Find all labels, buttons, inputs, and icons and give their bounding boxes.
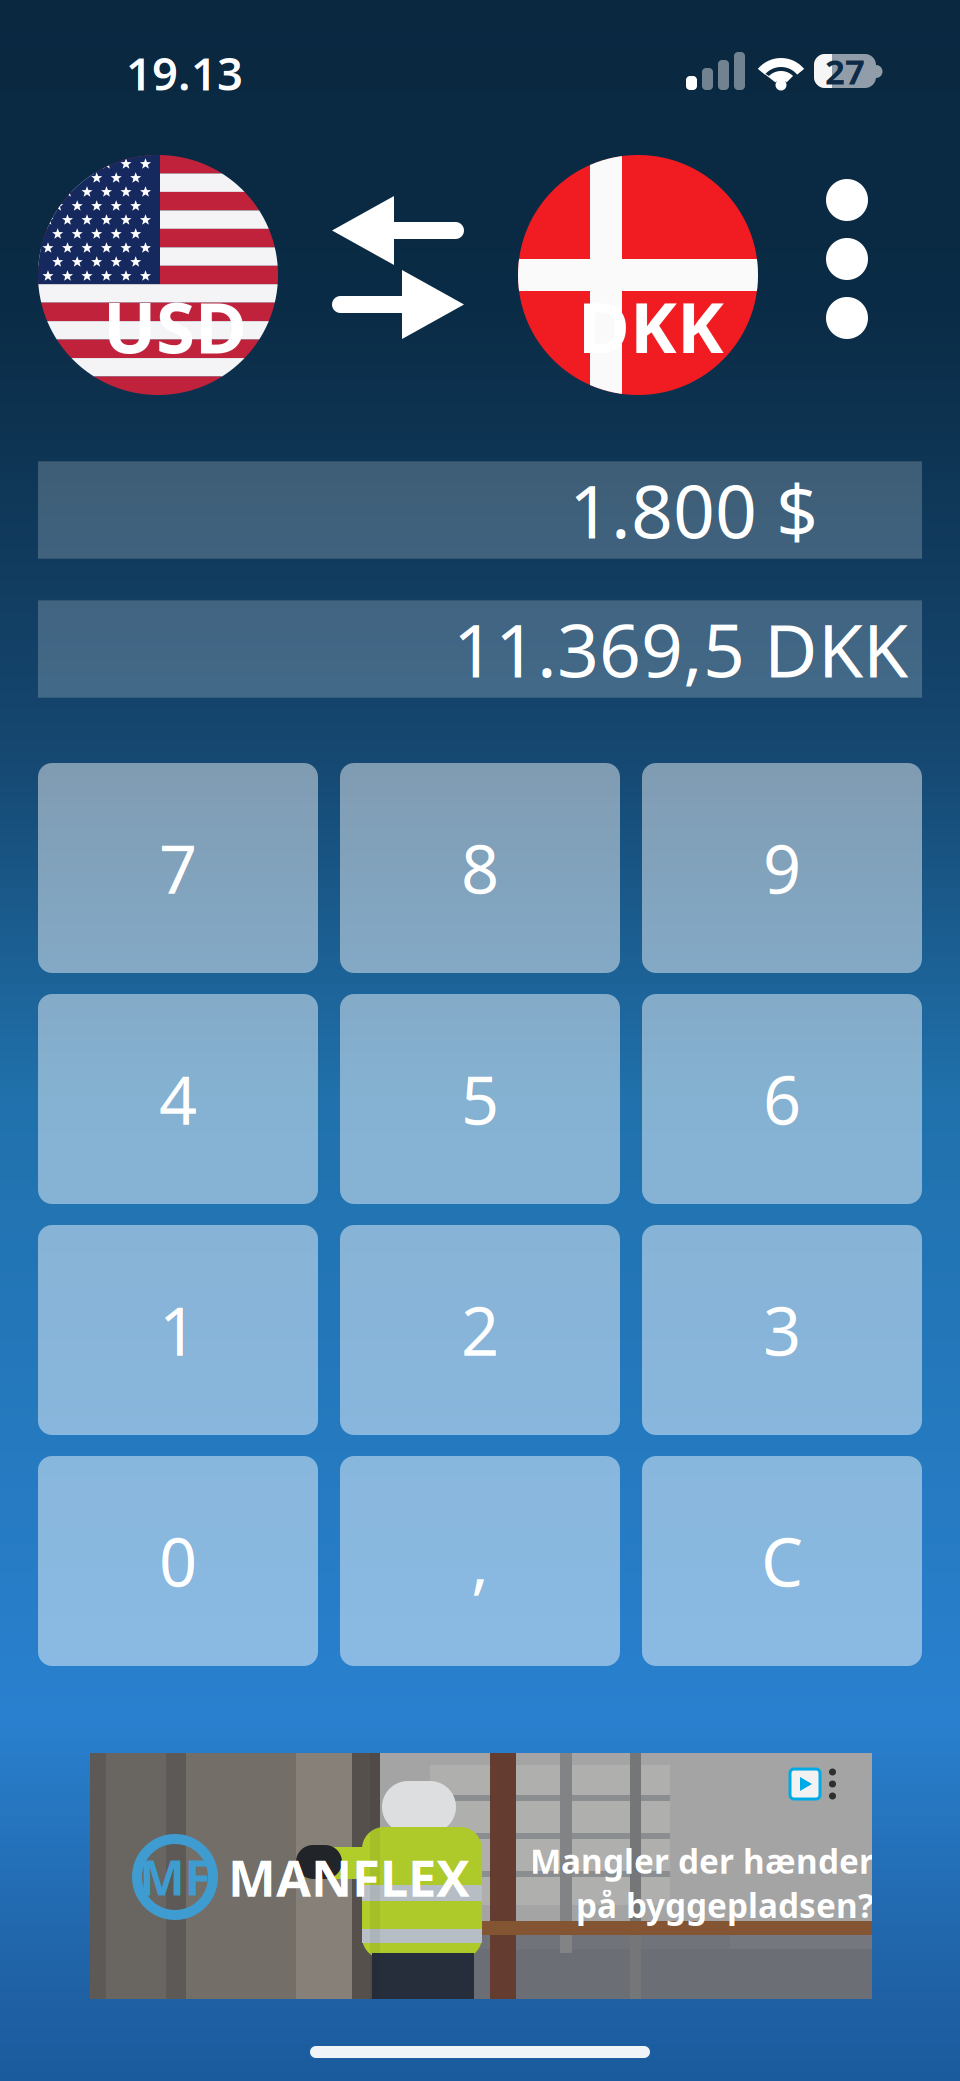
button[interactable]: 7	[38, 763, 318, 973]
staticText: MANFLEX	[228, 1843, 470, 1911]
staticText: 0	[159, 1517, 197, 1605]
staticText: 19.13	[126, 43, 243, 103]
button[interactable]: Advertisement: Manflex	[90, 1753, 872, 1999]
staticText: MF	[139, 1845, 210, 1909]
button[interactable]: 0	[38, 1456, 318, 1666]
staticText: 2	[461, 1286, 499, 1374]
button[interactable]: 5	[340, 994, 620, 1204]
staticText: 11.369,5 DKK	[453, 600, 908, 698]
button[interactable]: C	[642, 1456, 922, 1666]
button[interactable]: Swap currencies	[332, 196, 464, 340]
staticText: 6	[763, 1055, 801, 1143]
staticText: 8	[461, 824, 499, 912]
button[interactable]: 9	[642, 763, 922, 973]
staticText: Mangler der hænder	[530, 1839, 874, 1883]
staticText: 27	[825, 48, 865, 94]
button[interactable]: 1	[38, 1225, 318, 1435]
button[interactable]: 6	[642, 994, 922, 1204]
staticText: 7	[159, 824, 197, 912]
staticText: 1.800 $	[569, 461, 818, 559]
button[interactable]: ,	[340, 1456, 620, 1666]
button[interactable]: 3	[642, 1225, 922, 1435]
button[interactable]: More options	[806, 168, 888, 350]
button[interactable]: 8	[340, 763, 620, 973]
staticText: 3	[763, 1286, 801, 1374]
staticText: 9	[763, 824, 801, 912]
staticText: USD	[103, 279, 247, 373]
button[interactable]: 4	[38, 994, 318, 1204]
staticText: på byggepladsen?	[576, 1883, 874, 1927]
staticText: C	[761, 1517, 803, 1605]
button[interactable]: Target currency DKK	[518, 155, 758, 395]
staticText: DKK	[578, 279, 724, 373]
staticText: 5	[461, 1055, 499, 1143]
staticText: 1	[159, 1286, 197, 1374]
staticText: 4	[159, 1055, 197, 1143]
staticText: ,	[471, 1517, 489, 1605]
button[interactable]: Source currency USD	[38, 155, 278, 395]
button[interactable]: 2	[340, 1225, 620, 1435]
